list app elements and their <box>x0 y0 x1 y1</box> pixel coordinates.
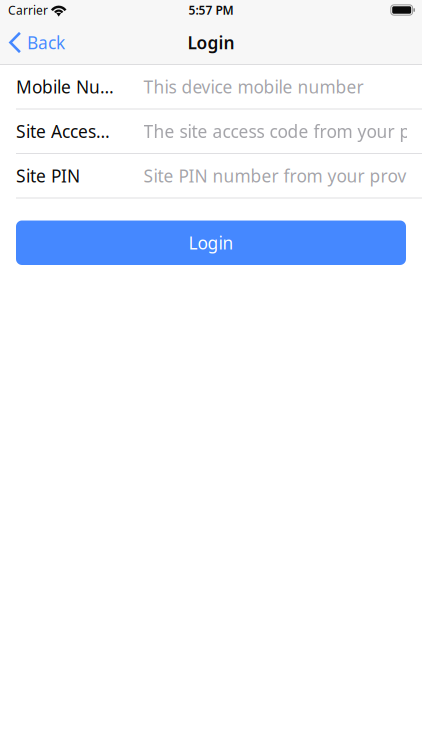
staticText: Login <box>188 231 233 254</box>
staticText: The site access code from your provider <box>143 120 422 143</box>
button[interactable]: Site Access Code <box>0 109 422 153</box>
button[interactable]: Login <box>16 220 406 265</box>
staticText: Carrier <box>8 2 48 18</box>
button[interactable]: Site PIN <box>0 154 422 197</box>
button[interactable]: Mobile Number <box>0 65 422 108</box>
staticText: Mobile Number <box>16 75 115 98</box>
staticText: Site Access Code <box>16 120 115 143</box>
staticText: Site PIN number from your provider <box>143 164 422 187</box>
button[interactable]: Back <box>0 20 75 64</box>
staticText: 5:57 PM <box>188 2 233 18</box>
staticText: Login <box>187 31 234 54</box>
staticText: This device mobile number <box>143 75 363 98</box>
staticText: Back <box>27 31 65 54</box>
staticText: Site PIN <box>16 164 80 187</box>
